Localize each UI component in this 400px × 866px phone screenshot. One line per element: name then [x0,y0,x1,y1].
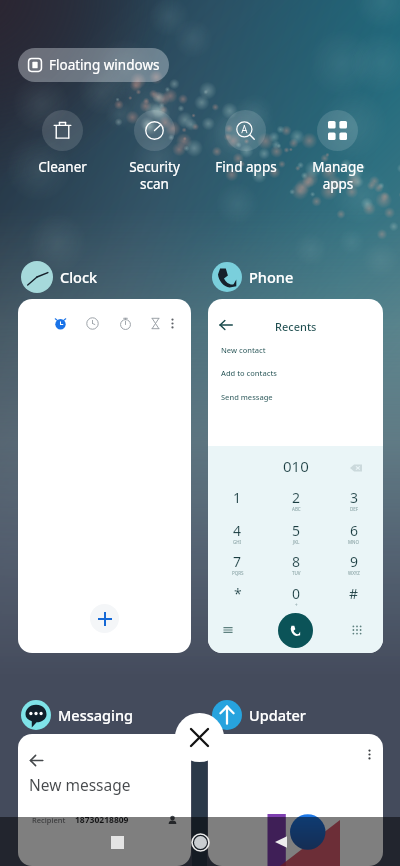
staticText: 6 [350,521,359,540]
staticText: 2 [292,488,301,507]
button[interactable]: Recents [100,825,134,859]
button[interactable]: Home [183,825,217,859]
button[interactable]: 0 [267,581,325,611]
button[interactable]: Floating windows [18,48,169,82]
staticText: 0 [292,584,301,603]
button[interactable]: Add alarm [18,299,191,653]
staticText: New message [29,774,131,795]
staticText: 3 [350,488,359,507]
button[interactable]: 3 [325,485,383,515]
button[interactable]: Find apps [200,110,291,176]
staticText: Recents [275,319,317,334]
button[interactable]: Clock [21,261,98,293]
staticText: Security scan [129,158,180,193]
button[interactable]: Phone [212,261,294,293]
staticText: Clock [60,267,98,287]
button[interactable]: Backspace [350,462,362,474]
staticText: 8 [292,552,301,571]
button[interactable]: 1 [208,485,267,515]
staticText: Manage apps [312,158,364,193]
staticText: 7 [233,552,242,571]
staticText: 1 [233,488,242,507]
staticText: + [295,602,298,608]
button[interactable]: Cleaner [17,110,108,176]
button[interactable]: 4 [208,518,267,548]
staticText: 010 [283,456,309,476]
button[interactable]: # [325,581,383,611]
staticText: MNO [348,539,360,545]
button[interactable]: Send message [208,388,383,406]
staticText: Recipient [32,815,66,825]
button[interactable]: 2 [267,485,325,515]
staticText: * [234,584,242,603]
staticText: DEF [350,506,359,512]
button[interactable]: Add to contacts [208,364,383,382]
button[interactable]: Back [264,825,298,859]
button[interactable]: 7 [208,549,267,579]
button[interactable]: Manage apps [292,110,383,193]
staticText: Cleaner [38,158,87,176]
staticText: Messaging [58,705,134,725]
staticText: WXYZ [348,570,360,576]
button[interactable]: 6 [325,518,383,548]
button[interactable]: Updater [212,699,306,731]
button[interactable]: More options [208,734,383,866]
staticText: Floating windows [49,56,160,74]
staticText: 4 [233,521,242,540]
staticText: Updater [249,705,306,725]
staticText: 9 [350,552,359,571]
button[interactable]: * [208,581,267,611]
button[interactable]: Call [278,613,313,648]
staticText: New contact [221,345,266,355]
button[interactable]: More options [363,748,376,761]
staticText: 5 [292,521,301,540]
button[interactable]: Keypad [351,624,363,636]
button[interactable]: Messaging [21,699,134,731]
button[interactable]: Back [208,299,383,653]
button[interactable]: New contact [208,341,383,359]
staticText: 18730218809 [75,814,129,826]
button[interactable]: Security scan [109,110,200,193]
button[interactable]: Back [29,753,44,768]
button[interactable]: 8 [267,549,325,579]
staticText: GHI [233,539,242,545]
staticText: TUV [292,570,301,576]
other: Contacts [167,815,178,826]
staticText: Send message [221,392,273,402]
staticText: Find apps [215,158,277,176]
button[interactable]: Call log [222,624,234,636]
staticText: ABC [292,506,301,512]
staticText: Phone [249,267,294,287]
staticText: JKL [293,539,300,545]
button[interactable]: 5 [267,518,325,548]
button[interactable]: 9 [325,549,383,579]
button[interactable]: Close all [175,713,224,762]
staticText: PQRS [232,570,244,576]
staticText: Add to contacts [221,368,277,378]
button[interactable]: Add alarm [90,604,119,633]
staticText: # [349,584,359,603]
other: Back [219,318,233,332]
button[interactable]: Back [18,734,191,866]
